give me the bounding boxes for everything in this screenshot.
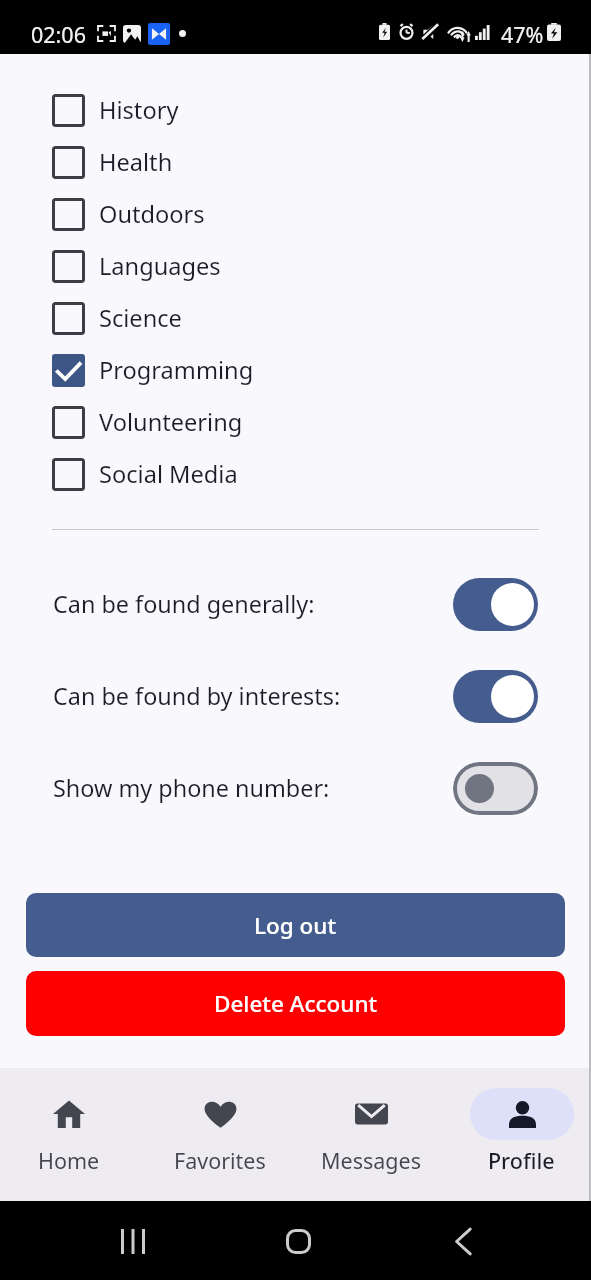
button[interactable]: Languages [0, 240, 591, 292]
button[interactable]: Favorites [144, 1068, 295, 1201]
button[interactable]: Social Media [0, 448, 591, 500]
button[interactable]: History [0, 84, 591, 136]
staticText: Favorites [174, 1146, 266, 1175]
staticText: Home [38, 1146, 100, 1175]
button[interactable]: Can be found generally: [0, 558, 591, 650]
staticText: 02:06 [31, 20, 86, 49]
button[interactable]: Show my phone number: [0, 742, 591, 834]
staticText: Programming [99, 354, 254, 386]
button[interactable]: Messages [295, 1068, 446, 1201]
staticText: Health [99, 146, 173, 178]
staticText: Show my phone number: [53, 772, 453, 804]
staticText: Can be found generally: [53, 588, 453, 620]
staticText: Science [99, 302, 182, 334]
staticText: Volunteering [99, 406, 243, 438]
button[interactable]: Volunteering [0, 396, 591, 448]
button[interactable]: Profile [446, 1068, 591, 1201]
button[interactable]: Health [0, 136, 591, 188]
button[interactable]: Programming [0, 344, 591, 396]
button[interactable]: Can be found by interests: [0, 650, 591, 742]
staticText: Outdoors [99, 198, 205, 230]
button[interactable]: Log out [26, 893, 565, 957]
staticText: Can be found by interests: [53, 680, 453, 712]
staticText: History [99, 94, 179, 126]
button[interactable]: Outdoors [0, 188, 591, 240]
staticText: Log out [254, 910, 337, 941]
button[interactable]: Delete Account [26, 971, 565, 1036]
staticText: Profile [488, 1146, 555, 1175]
staticText: Languages [99, 250, 221, 282]
staticText: Delete Account [214, 988, 378, 1019]
staticText: 47% [501, 20, 544, 49]
button[interactable]: Home [0, 1068, 144, 1201]
staticText: Messages [321, 1146, 421, 1175]
button[interactable]: Science [0, 292, 591, 344]
staticText: Social Media [99, 458, 238, 490]
